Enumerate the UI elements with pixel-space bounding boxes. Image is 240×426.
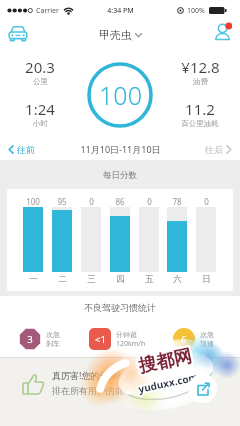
staticText: 120km/h [116, 339, 146, 349]
staticText: 1:24 [25, 99, 55, 119]
staticText: 0 [147, 196, 152, 207]
button[interactable]: <1 [89, 328, 146, 350]
staticText: 公里 [33, 77, 48, 86]
staticText: 11月10日-11月10日 [80, 143, 161, 155]
button[interactable] [188, 374, 217, 403]
staticText: 日 [202, 274, 211, 285]
staticText: 78 [172, 196, 182, 207]
staticText: 6 [181, 333, 187, 346]
staticText: 一 [29, 274, 38, 285]
staticText: 0 [204, 196, 209, 207]
staticText: 95 [57, 196, 67, 207]
staticText: 六 [173, 274, 182, 285]
staticText: 不良驾驶习惯统计 [84, 302, 156, 313]
staticText: 100 [99, 78, 142, 112]
staticText: 0 [89, 196, 94, 207]
staticText: 甲壳虫 [99, 28, 132, 42]
button[interactable]: 3 [19, 328, 60, 350]
staticText: yuduxx.com [137, 369, 199, 396]
staticText: 油费 [193, 77, 208, 86]
staticText: 二 [58, 274, 67, 285]
staticText: 11.2 [185, 99, 215, 119]
staticText: 20.3 [25, 57, 55, 77]
button[interactable]: 往前 [8, 144, 35, 155]
staticText: 往后 [205, 144, 223, 155]
staticText: yuduxx.com [137, 369, 199, 396]
staticText: ¥12.8 [181, 57, 220, 77]
staticText: 刹车 [46, 339, 60, 348]
staticText: 86 [115, 196, 125, 207]
button[interactable] [210, 21, 236, 45]
staticText: Carrier [36, 6, 59, 16]
staticText: 分钟超 [116, 330, 137, 339]
staticText: 小时 [33, 119, 48, 128]
staticText: 往前 [17, 144, 35, 155]
staticText: 排在所有用户的前11%! [52, 384, 145, 396]
staticText: 四 [116, 274, 125, 285]
staticText: 4:34 PM [107, 6, 134, 16]
staticText: 三 [87, 274, 96, 285]
staticText: 100% [187, 6, 205, 16]
button[interactable]: 甲壳虫 [99, 28, 142, 42]
staticText: 搜都网 [136, 344, 194, 378]
button[interactable]: 6 [173, 328, 214, 350]
staticText: 五 [145, 274, 154, 285]
staticText: 3 [27, 333, 33, 346]
button[interactable] [7, 23, 31, 45]
staticText: 100 [26, 196, 40, 207]
staticText: 百公里油耗 [181, 119, 219, 128]
staticText: 搜都网 [136, 344, 194, 378]
button[interactable]: 往后 [205, 144, 232, 155]
staticText: <1 [95, 333, 106, 346]
staticText: 每日分数 [103, 170, 137, 181]
staticText: 次急 [46, 330, 60, 339]
staticText: 次急 [200, 330, 214, 339]
staticText: 加速 [200, 339, 214, 348]
staticText: 真厉害!您的分(98分) [52, 369, 134, 381]
